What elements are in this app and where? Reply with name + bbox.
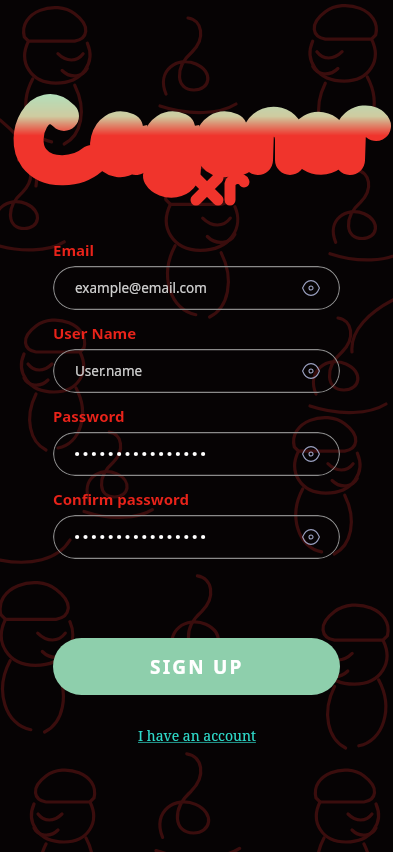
button[interactable]: Toggle visibility — [298, 441, 324, 467]
button[interactable]: Toggle visibility — [53, 515, 340, 559]
other: Caganer XR logo — [0, 80, 393, 180]
button[interactable]: Toggle visibility — [53, 432, 340, 476]
button[interactable]: example@email.com — [53, 266, 340, 310]
staticText: Confirm password — [53, 489, 189, 509]
button[interactable]: User.name — [53, 349, 340, 393]
button[interactable]: I have an account — [130, 722, 264, 749]
staticText: I have an account — [138, 726, 256, 745]
staticText: User.name — [75, 362, 143, 380]
button[interactable]: Toggle visibility — [298, 275, 324, 301]
button[interactable]: SIGN UP — [53, 638, 340, 695]
staticText: example@email.com — [75, 279, 207, 297]
staticText: Email — [53, 240, 94, 260]
button[interactable]: Toggle visibility — [298, 524, 324, 550]
staticText: SIGN UP — [150, 654, 244, 680]
staticText: Password — [53, 406, 125, 426]
staticText: User Name — [53, 323, 137, 343]
button[interactable]: Toggle visibility — [298, 358, 324, 384]
